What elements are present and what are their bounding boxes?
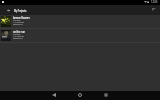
staticText: 1:15 seconds — [13, 34, 24, 37]
staticText: 1:15 seconds — [13, 20, 24, 23]
staticText: 480x640 px — [13, 36, 23, 39]
button[interactable]: on the run — [0, 29, 160, 42]
staticText: 12:05 — [151, 0, 158, 4]
button[interactable]: Navigate up — [4, 5, 13, 15]
button[interactable]: breeze flowers — [0, 15, 160, 28]
button[interactable]: Recent apps — [93, 91, 119, 100]
staticText: 3 photos — [13, 18, 21, 21]
staticText: 3 photos — [13, 32, 21, 35]
button[interactable]: Back — [41, 91, 67, 100]
staticText: 480x640 px — [13, 22, 23, 25]
staticText: on the run — [13, 29, 25, 34]
staticText: My Projects — [14, 8, 26, 13]
button[interactable]: Home — [67, 91, 93, 100]
staticText: breeze flowers — [13, 15, 30, 20]
